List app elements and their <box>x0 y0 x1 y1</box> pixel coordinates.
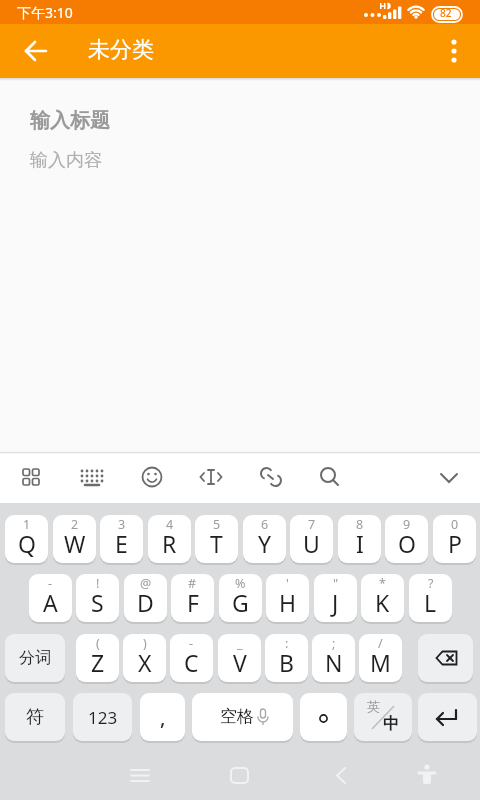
staticText: Q <box>18 528 36 559</box>
staticText: 0 <box>451 516 459 533</box>
staticText: 下午3:10 <box>17 3 73 22</box>
staticText: L <box>424 587 437 618</box>
button[interactable]: 输入内容 <box>30 149 102 172</box>
staticText: , <box>160 704 166 731</box>
button[interactable]: L <box>409 574 452 622</box>
staticText: R <box>162 528 177 559</box>
button[interactable]: J <box>314 574 357 622</box>
button[interactable]: F <box>171 574 214 622</box>
button[interactable] <box>317 755 365 800</box>
staticText: W <box>64 528 86 559</box>
button[interactable]: C <box>170 634 213 682</box>
staticText: ( <box>96 635 100 652</box>
staticText: 5 <box>213 516 221 533</box>
button[interactable] <box>130 455 174 500</box>
staticText: N <box>325 647 343 678</box>
button[interactable]: Y <box>243 515 286 563</box>
button[interactable] <box>189 455 233 500</box>
staticText: X <box>138 647 152 678</box>
staticText: 分词 <box>19 648 51 668</box>
button[interactable]: A <box>29 574 72 622</box>
staticText: S <box>91 587 104 618</box>
staticText: 空格 <box>220 706 254 727</box>
staticText: ) <box>143 635 147 652</box>
button[interactable]: U <box>290 515 333 563</box>
staticText: D <box>137 587 154 618</box>
staticText: C <box>184 647 199 678</box>
button[interactable]: P <box>433 515 476 563</box>
button[interactable]: O <box>385 515 428 563</box>
staticText: 82 <box>440 6 452 20</box>
button[interactable]: 空格 <box>192 693 293 741</box>
staticText: ? <box>428 575 434 592</box>
button[interactable]: R <box>148 515 191 563</box>
staticText: ! <box>96 575 100 592</box>
button[interactable] <box>432 29 476 73</box>
staticText: 英 <box>367 698 380 714</box>
button[interactable]: Z <box>76 634 119 682</box>
staticText: * <box>379 575 386 592</box>
button[interactable]: D <box>124 574 167 622</box>
staticText: Y <box>258 528 272 559</box>
staticText: I <box>356 528 364 559</box>
button[interactable] <box>14 29 58 73</box>
button[interactable]: N <box>312 634 355 682</box>
button[interactable]: B <box>265 634 308 682</box>
staticText: K <box>375 587 390 618</box>
button[interactable]: 123 <box>73 693 132 741</box>
button[interactable]: G <box>219 574 262 622</box>
button[interactable]: K <box>361 574 404 622</box>
staticText: ; <box>332 635 336 652</box>
staticText: U <box>303 528 320 559</box>
staticText: 1 <box>23 516 31 533</box>
button[interactable]: I <box>338 515 381 563</box>
button[interactable]: E <box>100 515 143 563</box>
staticText: A <box>43 587 58 618</box>
staticText: : <box>285 635 289 652</box>
button[interactable] <box>308 455 352 500</box>
staticText: E <box>115 528 128 559</box>
button[interactable]: 符 <box>5 693 65 741</box>
staticText: - <box>48 575 53 592</box>
staticText: ' <box>286 575 289 592</box>
button[interactable]: Q <box>5 515 48 563</box>
button[interactable] <box>9 455 53 500</box>
staticText: 6 <box>261 516 269 533</box>
button[interactable] <box>300 693 347 741</box>
button[interactable]: S <box>76 574 119 622</box>
staticText: F <box>187 587 199 618</box>
button[interactable] <box>216 755 264 800</box>
button[interactable]: T <box>195 515 238 563</box>
button[interactable] <box>418 693 477 741</box>
button[interactable]: 分词 <box>5 634 65 682</box>
button[interactable] <box>403 755 451 800</box>
button[interactable] <box>116 755 164 800</box>
button[interactable] <box>249 455 293 500</box>
button[interactable]: 英 <box>354 693 412 741</box>
staticText: 3 <box>118 516 126 533</box>
button[interactable] <box>70 455 114 500</box>
button[interactable]: M <box>359 634 402 682</box>
button[interactable]: , <box>140 693 185 741</box>
staticText: H <box>279 587 297 618</box>
staticText: # <box>188 575 197 592</box>
button[interactable] <box>427 455 471 500</box>
staticText: % <box>235 575 246 592</box>
staticText: - <box>189 635 194 652</box>
staticText: P <box>448 528 462 559</box>
staticText: T <box>210 528 223 559</box>
staticText: @ <box>140 575 152 592</box>
staticText: V <box>233 647 247 678</box>
button[interactable]: V <box>218 634 261 682</box>
staticText: 7 <box>308 516 316 533</box>
button[interactable]: H <box>266 574 309 622</box>
button[interactable]: X <box>123 634 166 682</box>
staticText: 未分类 <box>88 36 154 64</box>
button[interactable] <box>418 634 473 682</box>
button[interactable]: 输入标题 <box>30 108 110 133</box>
button[interactable]: W <box>53 515 96 563</box>
staticText: 4 <box>166 516 174 533</box>
staticText: / <box>378 635 383 652</box>
staticText: 符 <box>26 706 44 729</box>
staticText: 8 <box>356 516 364 533</box>
